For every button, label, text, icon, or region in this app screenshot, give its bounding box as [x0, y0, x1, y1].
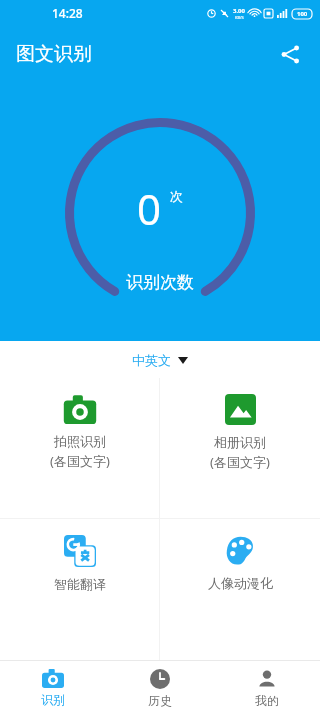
button[interactable]: Share — [270, 34, 310, 74]
staticText: 0 — [137, 180, 162, 237]
button[interactable]: Profile — [213, 661, 320, 715]
staticText: 我的 — [255, 693, 279, 708]
button[interactable]: History — [106, 661, 213, 715]
button[interactable]: 人像动漫化 — [160, 519, 320, 660]
button[interactable]: Recognize — [0, 661, 106, 715]
staticText: (各国文字) — [210, 453, 270, 471]
staticText: 智能翻译 — [54, 576, 106, 592]
staticText: (各国文字) — [50, 452, 110, 470]
staticText: 相册识别 — [214, 434, 266, 450]
button[interactable]: 中英文 — [122, 347, 198, 373]
staticText: 历史 — [148, 693, 172, 708]
button[interactable]: 相册识别 — [160, 378, 320, 518]
staticText: 图文识别 — [16, 42, 92, 66]
staticText: 中英文 — [132, 352, 171, 368]
staticText: KB/S — [235, 15, 244, 20]
staticText: 拍照识别 — [54, 433, 106, 449]
staticText: 次 — [170, 188, 183, 204]
staticText: 人像动漫化 — [208, 575, 273, 591]
button[interactable]: 智能翻译 — [0, 519, 159, 660]
staticText: 3.00 — [233, 7, 245, 15]
staticText: 14:28 — [52, 5, 83, 21]
staticText: 识别 — [41, 692, 65, 707]
staticText: 100 — [297, 10, 308, 18]
staticText: 识别次数 — [126, 272, 194, 293]
button[interactable]: 拍照识别 — [0, 378, 159, 518]
